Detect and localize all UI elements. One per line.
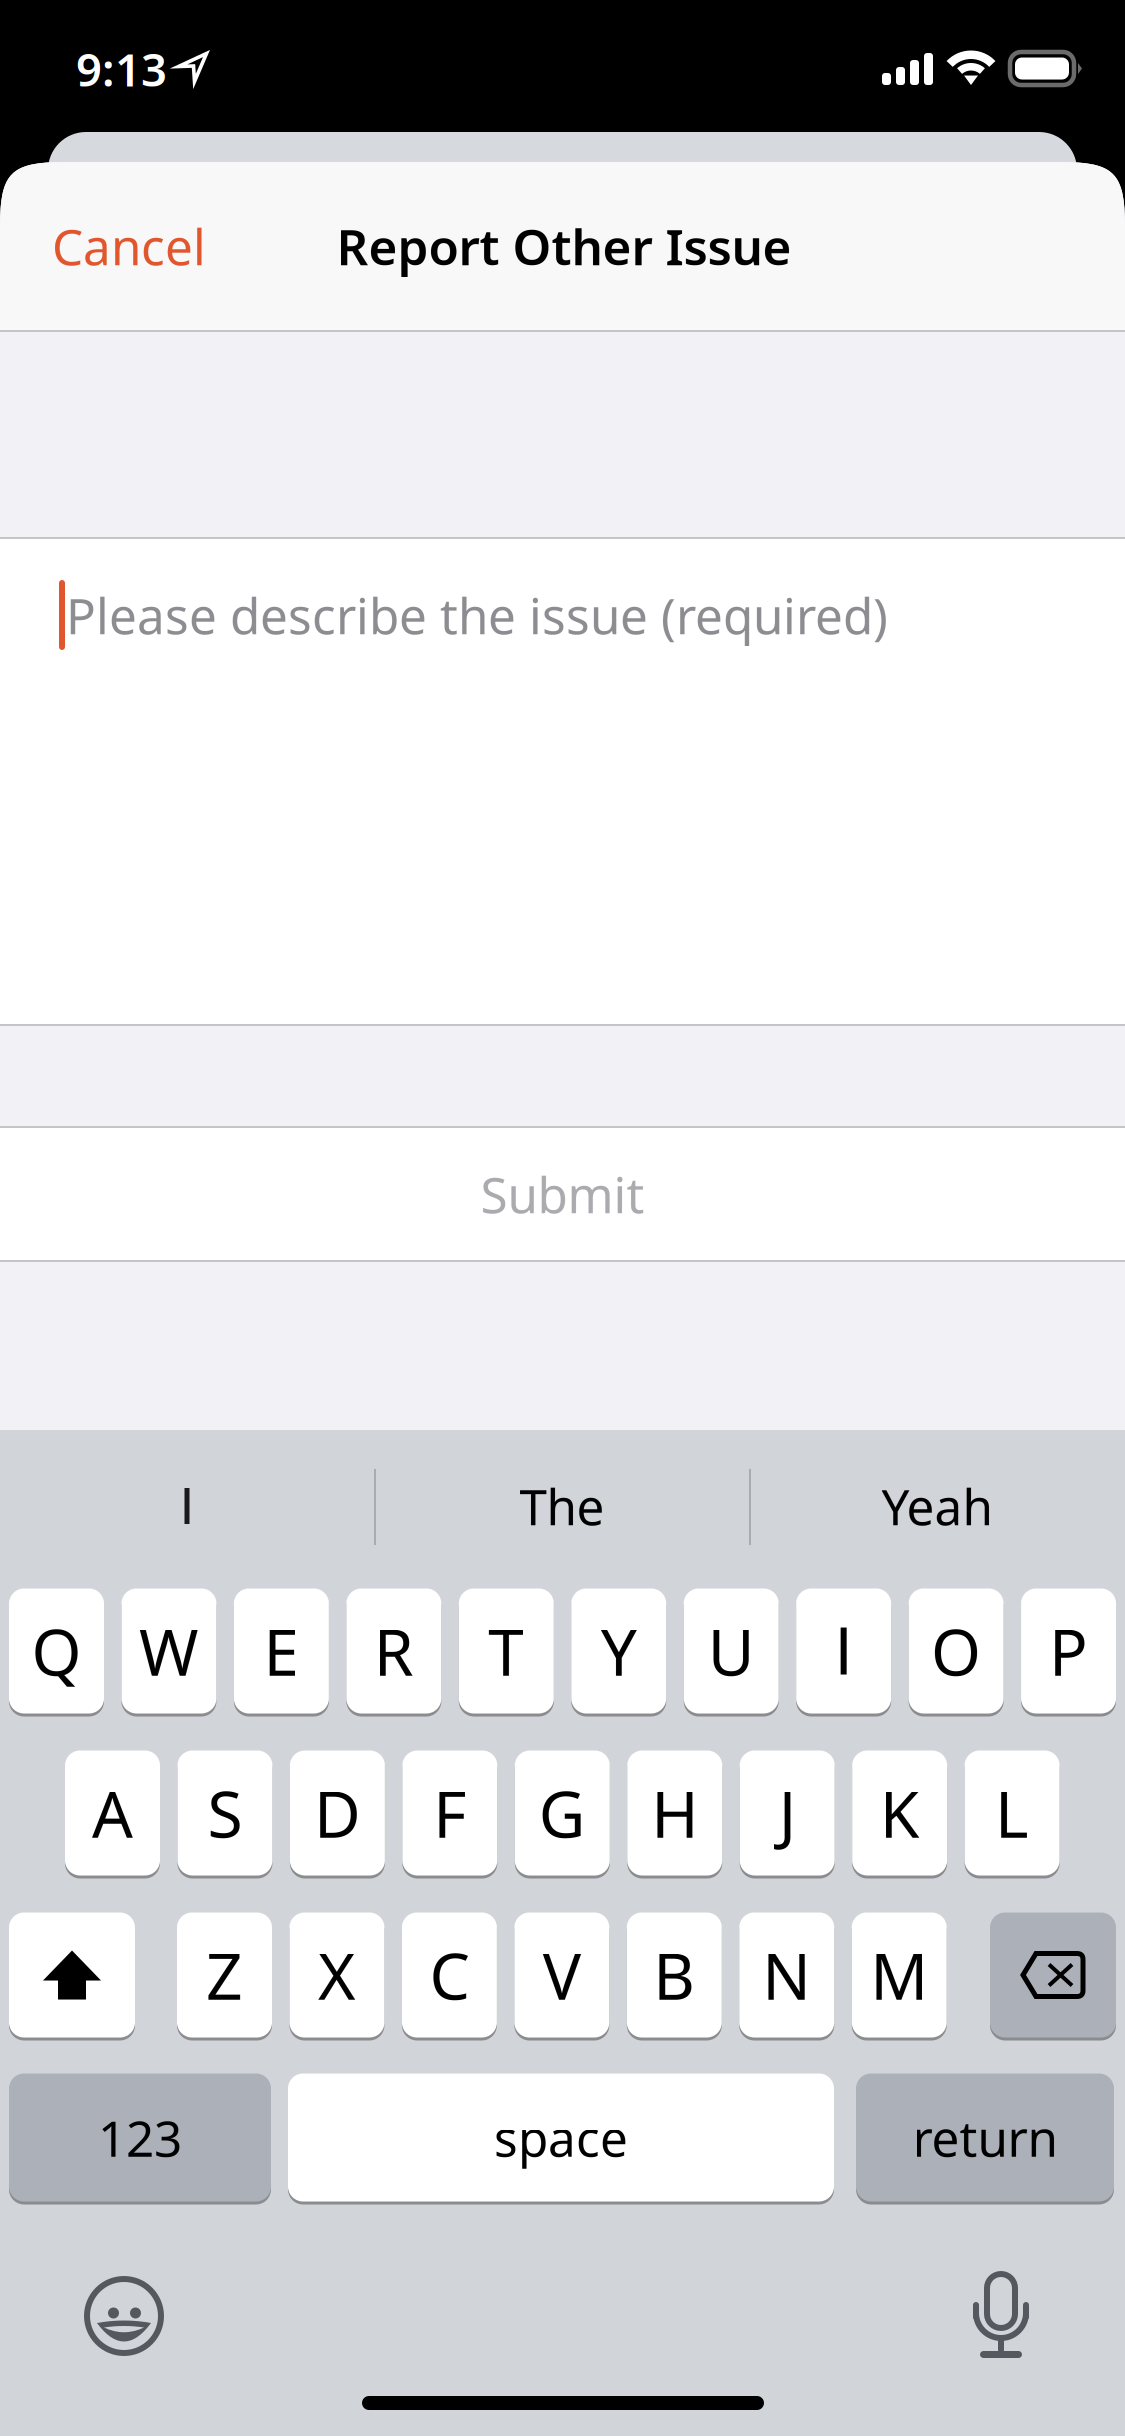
button[interactable]: Delete	[990, 1911, 1116, 2039]
button[interactable]: space	[288, 2072, 834, 2203]
button[interactable]: Dictation	[939, 2254, 1063, 2378]
button[interactable]: D	[290, 1749, 385, 1877]
staticText: P	[1049, 1608, 1088, 1693]
button[interactable]: R	[346, 1587, 441, 1715]
staticText: Submit	[480, 1161, 644, 1227]
staticText: U	[708, 1608, 755, 1693]
staticText: H	[651, 1770, 698, 1855]
staticText: K	[880, 1770, 920, 1855]
button[interactable]: X	[289, 1911, 384, 2039]
staticText: M	[870, 1932, 928, 2017]
staticText: return	[912, 2105, 1057, 2170]
staticText: G	[539, 1770, 586, 1855]
button[interactable]: 123	[9, 2072, 271, 2203]
button[interactable]: T	[459, 1587, 554, 1715]
staticText: Y	[601, 1608, 637, 1693]
button[interactable]: Cancel	[52, 191, 252, 301]
button[interactable]: P	[1021, 1587, 1116, 1715]
button[interactable]: Shift	[9, 1911, 135, 2039]
button[interactable]: H	[627, 1749, 722, 1877]
staticText: E	[263, 1608, 299, 1693]
button[interactable]: K	[852, 1749, 947, 1877]
staticText: J	[779, 1770, 796, 1855]
button[interactable]: V	[514, 1911, 609, 2039]
staticText: Yeah	[881, 1473, 992, 1539]
button[interactable]: W	[121, 1587, 216, 1715]
staticText: X	[318, 1932, 356, 2017]
staticText: N	[762, 1932, 811, 2017]
staticText: Cancel	[52, 213, 206, 279]
button[interactable]: S	[177, 1749, 272, 1877]
staticText: T	[488, 1608, 524, 1693]
staticText: D	[314, 1770, 361, 1855]
button[interactable]: I	[17, 1430, 357, 1582]
button[interactable]: Q	[9, 1587, 104, 1715]
staticText: The	[519, 1473, 604, 1539]
staticText: A	[92, 1770, 133, 1855]
button[interactable]: A	[65, 1749, 160, 1877]
staticText: O	[931, 1608, 981, 1693]
button[interactable]: Submit	[0, 1128, 1125, 1260]
button[interactable]: N	[739, 1911, 834, 2039]
staticText: Report Other Issue	[336, 213, 791, 279]
staticText: 9:13	[76, 39, 167, 99]
button[interactable]: C	[402, 1911, 497, 2039]
button[interactable]	[796, 1587, 891, 1715]
button[interactable]: O	[909, 1587, 1004, 1715]
button[interactable]: L	[965, 1749, 1060, 1877]
button[interactable]: Y	[571, 1587, 666, 1715]
staticText: L	[995, 1770, 1029, 1855]
button[interactable]: Yeah	[767, 1430, 1107, 1582]
staticText: R	[374, 1608, 414, 1693]
button[interactable]: B	[627, 1911, 722, 2039]
staticText: F	[433, 1770, 466, 1855]
button[interactable]: U	[684, 1587, 779, 1715]
button[interactable]: E	[234, 1587, 329, 1715]
staticText: B	[653, 1932, 695, 2017]
button[interactable]: J	[740, 1749, 835, 1877]
button[interactable]: Z	[177, 1911, 272, 2039]
staticText: Please describe the issue (required)	[66, 582, 888, 648]
staticText: space	[494, 2105, 628, 2170]
staticText: W	[139, 1608, 199, 1693]
button[interactable]: return	[856, 2072, 1114, 2203]
button[interactable]: M	[852, 1911, 947, 2039]
staticText: C	[429, 1932, 469, 2017]
staticText: S	[207, 1770, 242, 1855]
button[interactable]: F	[402, 1749, 497, 1877]
staticText: Q	[31, 1608, 81, 1693]
staticText: 123	[98, 2105, 182, 2170]
button[interactable]: Emoji keyboard	[62, 2254, 186, 2378]
button[interactable]: G	[515, 1749, 610, 1877]
staticText: V	[543, 1932, 581, 2017]
button[interactable]: The	[392, 1430, 732, 1582]
staticText: Z	[206, 1932, 243, 2017]
